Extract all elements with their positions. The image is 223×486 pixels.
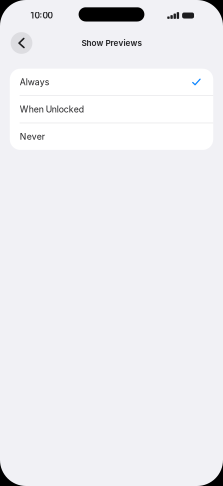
staticText: Never [20,131,45,142]
staticText: Always [20,77,50,87]
button[interactable]: When Unlocked [10,96,213,123]
button[interactable]: Never [10,123,213,150]
staticText: When Unlocked [20,104,84,115]
button[interactable]: Always [10,69,213,95]
staticText: Show Previews [81,38,141,48]
staticText: 10:00 [30,10,52,21]
button[interactable]: Back [8,30,34,56]
